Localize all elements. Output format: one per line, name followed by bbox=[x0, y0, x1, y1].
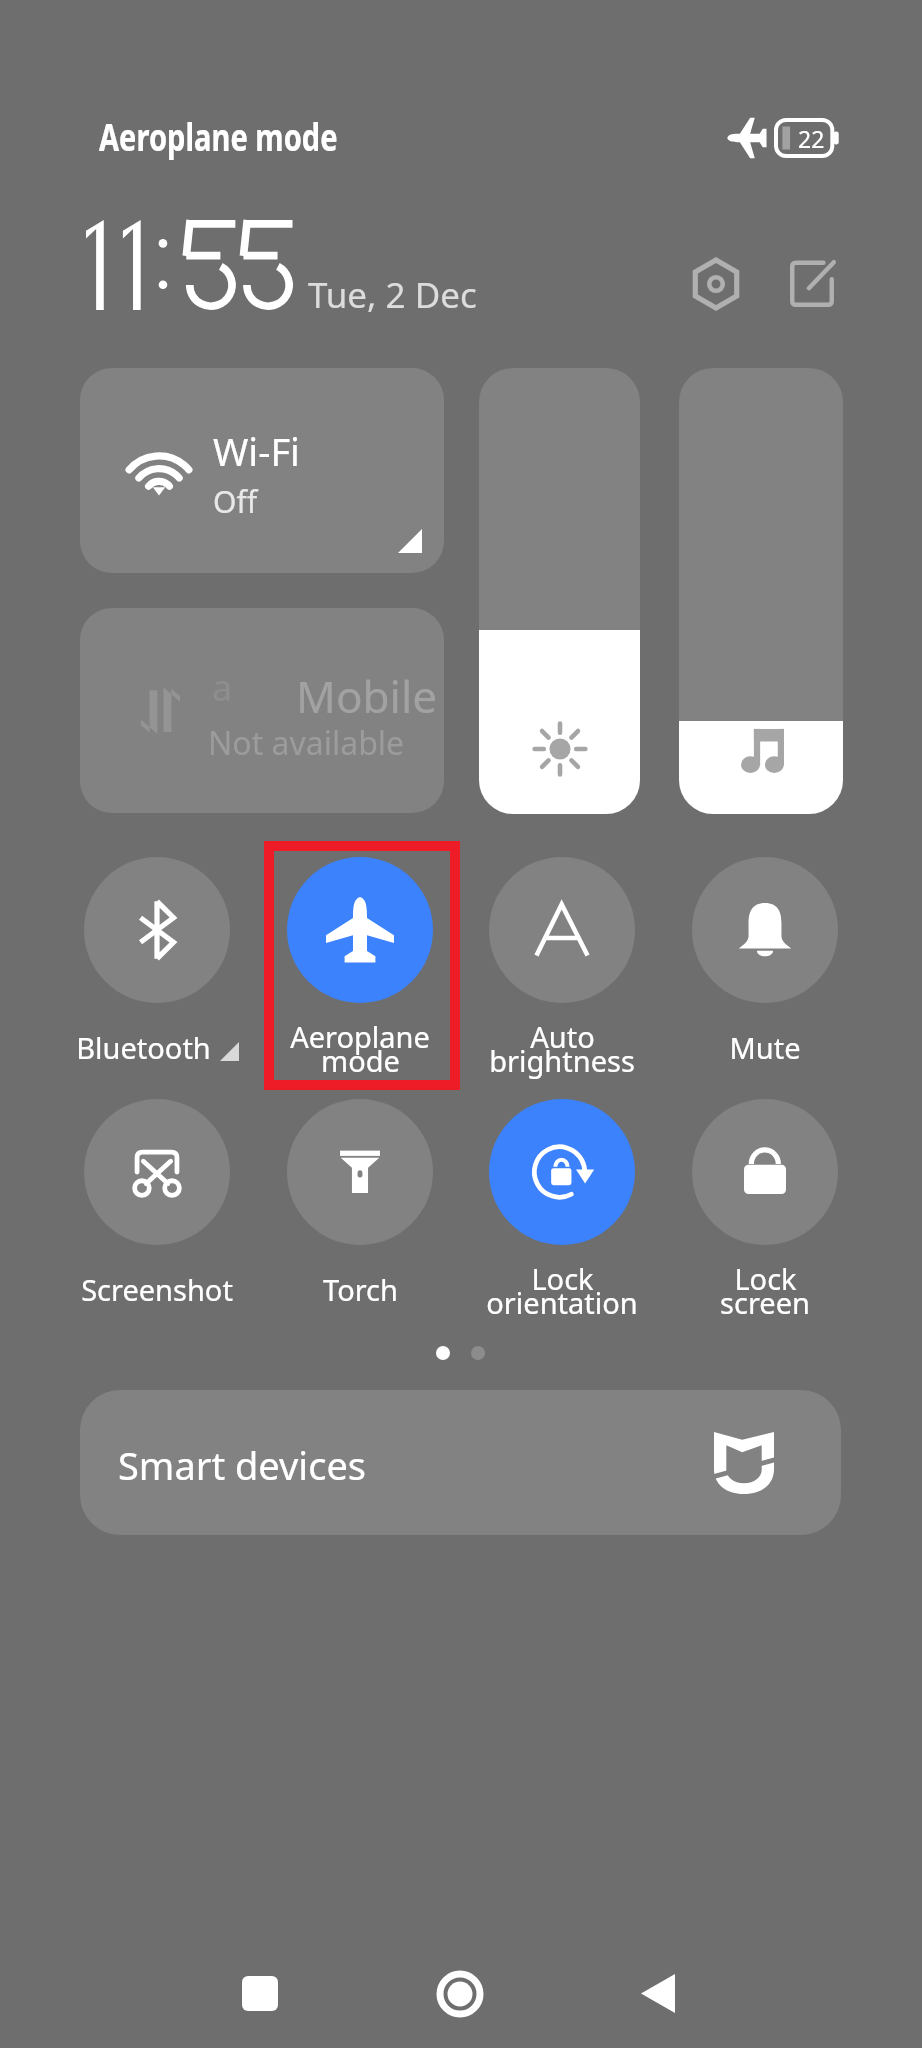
staticText: Off bbox=[213, 481, 258, 522]
button[interactable]: Lock bbox=[664, 1099, 866, 1319]
staticText: Screenshot bbox=[81, 1270, 233, 1309]
staticText: Tue, 2 Dec bbox=[308, 271, 477, 319]
staticText: Mobile data bbox=[296, 666, 444, 726]
button[interactable]: Aeroplane bbox=[259, 857, 461, 1077]
staticText: Aeroplane mode bbox=[99, 110, 338, 162]
staticText: screen bbox=[720, 1283, 810, 1322]
staticText: Aeroplane bbox=[290, 1017, 430, 1056]
button[interactable]: Edit bbox=[778, 250, 846, 318]
button[interactable]: Recent apps bbox=[218, 1950, 302, 2034]
button[interactable]: Mute bbox=[664, 857, 866, 1057]
staticText: Not available bbox=[208, 721, 405, 765]
staticText: a bbox=[212, 663, 233, 712]
staticText: brightness bbox=[489, 1041, 635, 1080]
button[interactable]: Wi-Fi bbox=[80, 368, 444, 573]
button[interactable] bbox=[679, 368, 843, 814]
button[interactable]: Auto bbox=[461, 857, 663, 1077]
staticText: Auto bbox=[530, 1017, 595, 1056]
button[interactable]: Bluetooth bbox=[56, 857, 258, 1057]
staticText: Bluetooth bbox=[76, 1028, 211, 1067]
button[interactable]: Settings bbox=[682, 250, 750, 318]
button[interactable]: Smart devices bbox=[80, 1390, 841, 1535]
button[interactable]: Back bbox=[617, 1950, 701, 2034]
staticText: Lock bbox=[734, 1259, 797, 1298]
staticText: Wi-Fi bbox=[213, 425, 300, 477]
button[interactable] bbox=[479, 368, 640, 814]
staticText: Mute bbox=[729, 1028, 801, 1067]
staticText: 22 bbox=[798, 123, 825, 154]
button[interactable]: Screenshot bbox=[56, 1099, 258, 1299]
staticText: orientation bbox=[486, 1283, 638, 1322]
button[interactable]: Home bbox=[418, 1950, 502, 2034]
button[interactable]: Torch bbox=[259, 1099, 461, 1299]
staticText: Torch bbox=[323, 1270, 398, 1309]
staticText: Smart devices bbox=[118, 1439, 367, 1491]
staticText: mode bbox=[321, 1041, 400, 1080]
button[interactable]: Lock bbox=[461, 1099, 663, 1319]
button[interactable]: a bbox=[80, 608, 444, 813]
staticText: Lock bbox=[531, 1259, 594, 1298]
